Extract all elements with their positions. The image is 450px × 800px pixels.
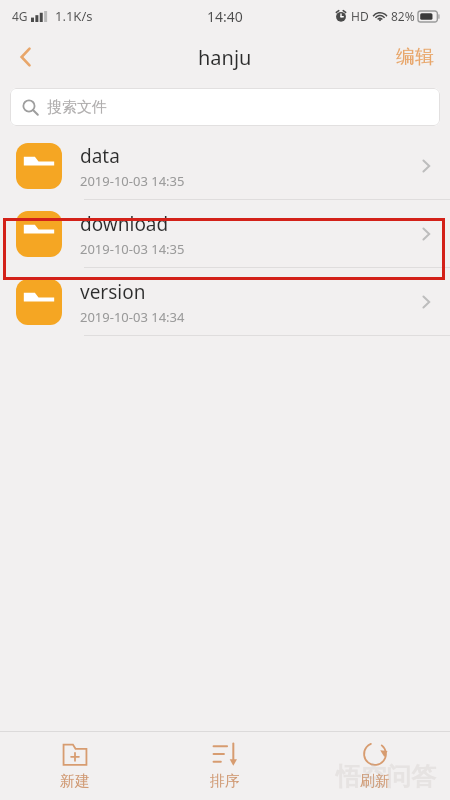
staticText: 刷新	[360, 772, 390, 791]
staticText: 悟空问答	[336, 761, 436, 792]
staticText: 4G	[12, 8, 28, 24]
staticText: 82%	[391, 8, 415, 24]
staticText: 2019-10-03 14:35	[80, 172, 185, 190]
button[interactable]: Back	[0, 32, 52, 82]
staticText: download	[80, 211, 169, 237]
staticText: HD	[351, 8, 369, 24]
staticText: 编辑	[396, 45, 434, 69]
staticText: 1.1K/s	[55, 7, 93, 25]
button[interactable]: data	[0, 132, 450, 200]
staticText: 搜索文件	[47, 98, 107, 117]
button[interactable]: download	[0, 200, 450, 268]
staticText: data	[80, 143, 120, 169]
staticText: 新建	[60, 772, 90, 791]
staticText: hanju	[198, 44, 252, 71]
button[interactable]: version	[0, 268, 450, 336]
button[interactable]: 搜索文件	[10, 88, 440, 126]
button[interactable]: 编辑	[390, 39, 440, 75]
staticText: version	[80, 279, 146, 305]
button[interactable]: Refresh	[300, 732, 450, 800]
button[interactable]: New folder	[0, 732, 150, 800]
staticText: 2019-10-03 14:34	[80, 308, 185, 326]
button[interactable]: Sort	[150, 732, 300, 800]
staticText: 14:40	[207, 7, 243, 26]
staticText: 2019-10-03 14:35	[80, 240, 185, 258]
staticText: 排序	[210, 772, 240, 791]
